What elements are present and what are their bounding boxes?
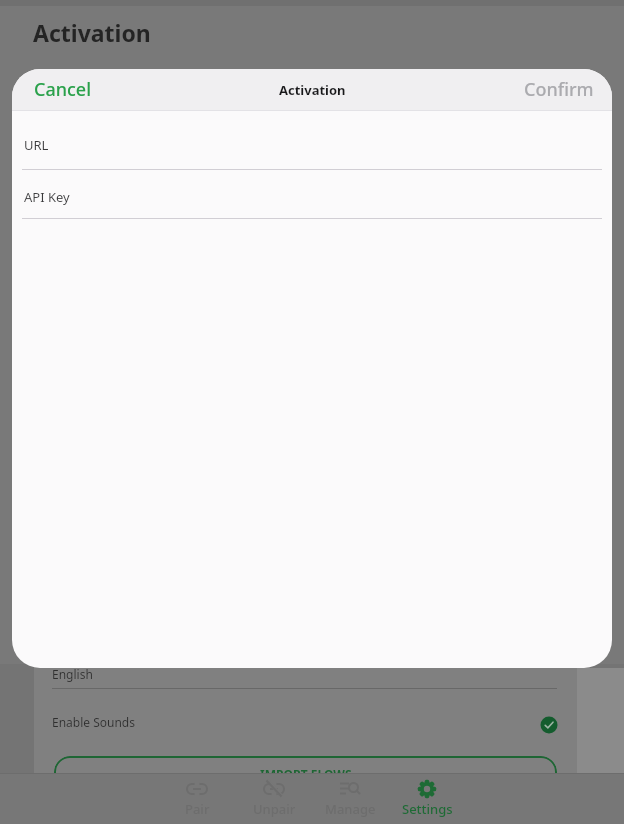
staticText: Manage bbox=[325, 800, 376, 818]
staticText: Settings bbox=[402, 800, 453, 818]
staticText: API Key bbox=[24, 188, 70, 206]
staticText: Unpair bbox=[253, 800, 296, 818]
staticText: Enable Sounds bbox=[52, 714, 135, 730]
staticText: IMPORT FLOWS bbox=[260, 766, 352, 782]
button[interactable]: URL bbox=[12, 124, 612, 169]
staticText: URL bbox=[24, 136, 49, 154]
button[interactable]: IMPORT FLOWS bbox=[54, 756, 557, 800]
button[interactable]: API Key bbox=[12, 173, 612, 218]
staticText: English bbox=[52, 666, 93, 682]
button[interactable]: Confirm bbox=[524, 77, 594, 102]
button[interactable]: Settings bbox=[389, 774, 465, 824]
staticText: Pair bbox=[185, 800, 210, 818]
button[interactable]: Cancel bbox=[34, 77, 92, 102]
staticText: Cancel bbox=[34, 77, 92, 102]
staticText: Activation bbox=[279, 81, 346, 99]
staticText: Activation bbox=[33, 17, 151, 48]
staticText: Confirm bbox=[524, 77, 594, 102]
